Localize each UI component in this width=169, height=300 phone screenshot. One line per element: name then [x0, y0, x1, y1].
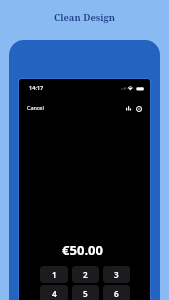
button[interactable]: 1 — [40, 266, 68, 283]
button[interactable]: 6 — [103, 285, 130, 300]
button[interactable]: Cancel — [25, 102, 46, 113]
staticText: Clean Design — [0, 11, 169, 24]
staticText: 3 — [114, 269, 119, 280]
button[interactable]: Settings — [133, 104, 145, 116]
staticText: 2 — [83, 269, 88, 280]
staticText: Cancel — [27, 104, 44, 111]
staticText: 1 — [52, 269, 57, 280]
staticText: 6 — [114, 288, 119, 299]
staticText: 14:17 — [29, 84, 44, 92]
button[interactable]: Statistics — [123, 104, 135, 116]
button[interactable]: 4 — [40, 285, 68, 300]
button[interactable]: 3 — [103, 266, 130, 283]
button[interactable]: 5 — [72, 285, 99, 300]
staticText: €50.00 — [19, 241, 148, 259]
staticText: 5 — [83, 288, 88, 299]
staticText: 4 — [52, 288, 57, 299]
button[interactable]: 2 — [72, 266, 99, 283]
